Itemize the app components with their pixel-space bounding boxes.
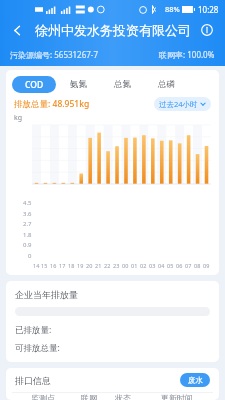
staticText: 总氮 xyxy=(114,79,131,90)
staticText: 排放总量: 48.951kg xyxy=(14,98,90,110)
button[interactable]: Info xyxy=(197,20,217,40)
staticText: 03 xyxy=(149,262,156,269)
staticText: 0 xyxy=(28,252,32,260)
staticText: 88% xyxy=(165,4,180,14)
staticText: 氨氮 xyxy=(70,79,87,90)
staticText: 污染源编号: 56531267-7 xyxy=(10,49,98,60)
staticText: 19 xyxy=(77,262,84,269)
staticText: 10:28 xyxy=(198,4,219,15)
button[interactable]: COD xyxy=(12,76,56,93)
staticText: 21 xyxy=(95,262,102,269)
staticText: 09 xyxy=(203,262,210,269)
staticText: 联网 xyxy=(81,393,97,400)
staticText: COD xyxy=(25,79,44,91)
staticText: 排口信息 xyxy=(15,375,51,386)
staticText: 16 xyxy=(50,262,57,269)
staticText: 徐州中发水务投资有限公司 xyxy=(35,22,191,38)
staticText: 18 xyxy=(68,262,75,269)
staticText: 废水 xyxy=(188,376,203,385)
staticText: 联网率: 100.0% xyxy=(159,49,215,60)
staticText: 企业当年排放量 xyxy=(15,289,78,300)
staticText: 4.5 xyxy=(23,199,32,207)
staticText: 15 xyxy=(41,262,48,269)
staticText: 3.6 xyxy=(23,210,32,218)
staticText: 状态 xyxy=(115,393,131,400)
button[interactable]: 过去24小时 xyxy=(154,97,211,111)
staticText: 可排放总量: xyxy=(15,342,60,354)
staticText: 23 xyxy=(113,262,120,269)
staticText: 已排放量: xyxy=(15,324,52,336)
staticText: 1.8 xyxy=(23,231,32,239)
staticText: 22 xyxy=(104,262,111,269)
staticText: 05 xyxy=(167,262,174,269)
staticText: 总磷 xyxy=(158,79,175,90)
staticText: 14 xyxy=(33,262,40,269)
staticText: 更新时间 xyxy=(161,393,193,400)
staticText: 01 xyxy=(131,262,138,269)
staticText: 2.7 xyxy=(23,220,32,228)
staticText: 07 xyxy=(185,262,192,269)
staticText: 监测点 xyxy=(31,393,55,400)
button[interactable]: 总磷 xyxy=(144,76,188,93)
button[interactable]: 废水 xyxy=(180,373,210,387)
staticText: kg xyxy=(14,113,23,123)
button[interactable]: 总氮 xyxy=(100,76,144,93)
staticText: 17 xyxy=(59,262,66,269)
staticText: 06 xyxy=(176,262,183,269)
staticText: 过去24小时 xyxy=(159,99,198,109)
staticText: 02 xyxy=(140,262,147,269)
staticText: 00 xyxy=(122,262,129,269)
button[interactable]: 氨氮 xyxy=(56,76,100,93)
button[interactable]: Back xyxy=(6,19,28,41)
staticText: 20 xyxy=(86,262,93,269)
staticText: 08 xyxy=(194,262,201,269)
staticText: 0.9 xyxy=(23,241,32,249)
staticText: 04 xyxy=(158,262,165,269)
